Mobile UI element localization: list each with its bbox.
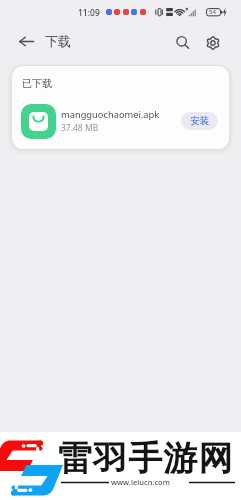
staticText: mangguochaomei.apk <box>61 108 160 121</box>
staticText: www.leiucn.com <box>111 477 170 487</box>
staticText: 37.48 MB <box>61 122 99 134</box>
staticText: 54 <box>209 8 216 16</box>
button[interactable]: 安装 <box>181 112 218 130</box>
staticText: 11:09 <box>78 7 100 19</box>
staticText: 已下载 <box>22 77 52 90</box>
staticText: 安装 <box>190 115 210 127</box>
staticText: 下载 <box>45 33 71 49</box>
button[interactable]: Search <box>169 29 196 56</box>
button[interactable]: Settings <box>199 29 226 56</box>
button[interactable]: Back <box>13 28 40 55</box>
staticText: 雷羽手游网 <box>58 437 234 480</box>
button[interactable]: mangguochaomei.apk <box>12 96 229 149</box>
